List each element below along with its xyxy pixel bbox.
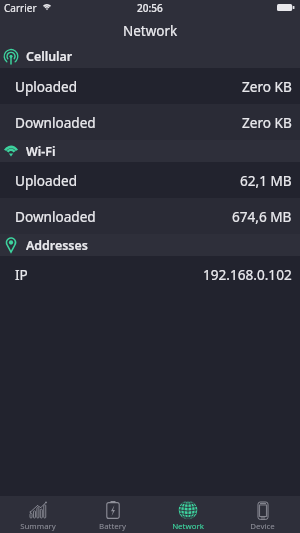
other: Wi-Fi signal — [42, 1, 52, 11]
button[interactable]: Downloaded — [0, 104, 300, 140]
staticText: Cellular — [26, 48, 73, 65]
button[interactable]: Downloaded — [0, 198, 300, 234]
button[interactable]: Uploaded — [0, 162, 300, 198]
staticText: Summary — [20, 521, 56, 532]
staticText: Wi-Fi — [26, 143, 56, 160]
button[interactable]: Device — [225, 496, 300, 533]
button[interactable]: Network — [150, 496, 225, 533]
staticText: 192.168.0.102 — [203, 265, 292, 284]
button[interactable]: IP — [0, 256, 300, 292]
other: Battery full — [277, 4, 295, 11]
staticText: Downloaded — [15, 207, 96, 226]
staticText: IP — [15, 265, 28, 284]
staticText: Uploaded — [15, 171, 78, 190]
staticText: Uploaded — [15, 77, 78, 96]
other: Addresses — [3, 237, 19, 253]
staticText: 674,6 MB — [232, 207, 292, 226]
staticText: Device — [250, 521, 275, 532]
button[interactable]: Uploaded — [0, 68, 300, 104]
staticText: 20:56 — [137, 1, 163, 15]
button[interactable]: Summary — [0, 496, 75, 533]
staticText: Downloaded — [15, 113, 96, 132]
staticText: Battery — [99, 521, 126, 532]
staticText: Zero KB — [242, 113, 292, 132]
staticText: Addresses — [26, 237, 88, 254]
staticText: Carrier — [4, 1, 37, 15]
other: Wi-Fi — [3, 143, 19, 159]
button[interactable]: Battery — [75, 496, 150, 533]
staticText: Zero KB — [242, 77, 292, 96]
staticText: Network — [123, 22, 178, 40]
staticText: Network — [172, 521, 204, 532]
staticText: 62,1 MB — [240, 171, 292, 190]
other: Cellular — [3, 49, 19, 65]
